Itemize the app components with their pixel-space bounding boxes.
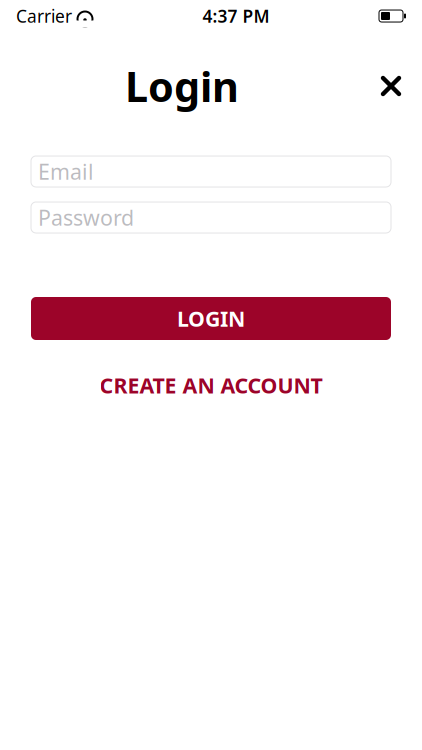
staticText: Carrier xyxy=(16,4,72,27)
staticText: LOGIN xyxy=(177,304,245,333)
staticText: Login xyxy=(125,59,239,113)
staticText: Email xyxy=(38,157,94,186)
staticText: Password xyxy=(38,203,134,232)
button[interactable]: LOGIN xyxy=(31,297,391,340)
staticText: 4:37 PM xyxy=(202,4,269,27)
staticText: CREATE AN ACCOUNT xyxy=(99,371,322,399)
button[interactable]: Close xyxy=(369,64,413,108)
button[interactable]: CREATE AN ACCOUNT xyxy=(87,363,334,407)
